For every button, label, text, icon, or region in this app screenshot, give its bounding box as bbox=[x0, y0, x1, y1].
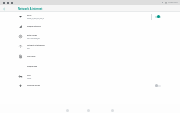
staticText: Mobile network bbox=[27, 25, 41, 27]
staticText: Wave_5_GHz_2G_lnk_x bbox=[27, 17, 44, 19]
staticText: Mobile plan bbox=[27, 65, 38, 67]
button[interactable]: Back bbox=[1, 6, 6, 11]
staticText: None bbox=[27, 77, 32, 79]
button[interactable]: Back bbox=[64, 107, 71, 113]
button[interactable]: Recent apps bbox=[109, 107, 116, 113]
staticText: Data usage bbox=[27, 34, 37, 36]
button[interactable]: Mobile plan bbox=[0, 61, 180, 71]
button[interactable]: VPN bbox=[0, 71, 180, 81]
button[interactable]: Wi-Fi switch bbox=[154, 14, 163, 19]
staticText: Hotspot & tethering bbox=[27, 44, 45, 46]
staticText: 12:30 PM bbox=[168, 1, 178, 4]
button[interactable]: Mobile network bbox=[0, 21, 180, 31]
button[interactable]: Airplane mode switch bbox=[154, 83, 163, 88]
staticText: Network & internet bbox=[18, 7, 43, 10]
staticText: VPN bbox=[27, 74, 31, 76]
button[interactable]: SIM cards bbox=[0, 51, 180, 61]
button[interactable]: Wi-Fi bbox=[0, 11, 180, 21]
button[interactable]: Airplane mode bbox=[0, 80, 180, 90]
staticText: Airplane mode bbox=[27, 84, 40, 86]
button[interactable]: Hotspot & tethering bbox=[0, 41, 180, 51]
staticText: Wi-Fi bbox=[27, 14, 32, 16]
staticText: SIM cards bbox=[27, 55, 36, 57]
button[interactable]: Data usage bbox=[0, 31, 180, 41]
staticText: Off bbox=[27, 47, 30, 49]
staticText: 3.51 GB used Jan bbox=[27, 37, 40, 39]
button[interactable]: Home bbox=[85, 107, 92, 113]
